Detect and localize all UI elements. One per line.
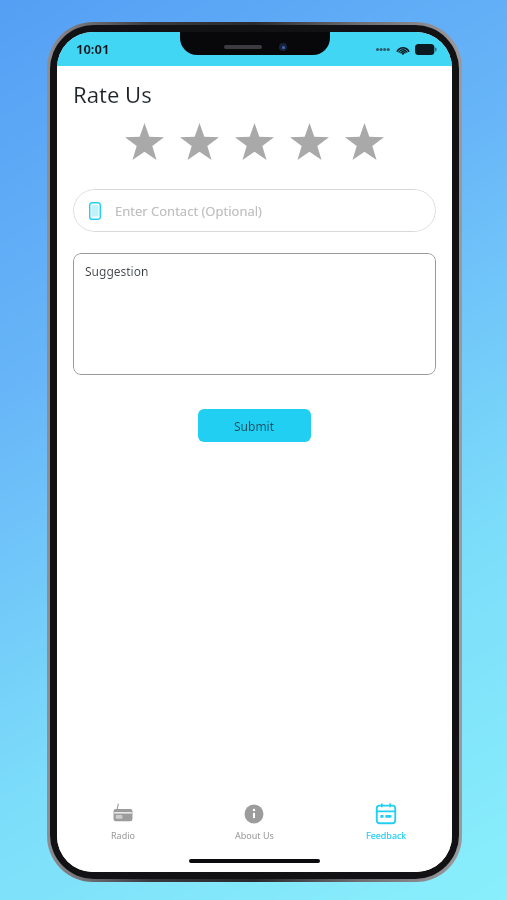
button[interactable]: Enter Contact (Optional) [73, 189, 436, 232]
button[interactable]: Suggestion [73, 253, 436, 375]
staticText: 10:01 [76, 40, 110, 58]
staticText: About Us [235, 829, 274, 841]
button[interactable]: Rate 1 star [117, 121, 172, 165]
button[interactable]: Rate 4 star [282, 121, 337, 165]
staticText: Rate Us [73, 79, 152, 109]
button[interactable]: Rate 5 star [337, 121, 392, 165]
button[interactable]: About Us [188, 794, 320, 850]
button[interactable]: Submit [198, 409, 311, 442]
button[interactable]: Radio [57, 794, 188, 850]
button[interactable]: Rate 2 star [172, 121, 227, 165]
button[interactable]: Feedback [320, 794, 452, 850]
staticText: Enter Contact (Optional) [115, 202, 262, 220]
staticText: Feedback [366, 829, 407, 841]
staticText: Suggestion [85, 263, 149, 279]
button[interactable]: Rate 3 star [227, 121, 282, 165]
staticText: Radio [111, 829, 135, 841]
staticText: Submit [234, 418, 275, 434]
